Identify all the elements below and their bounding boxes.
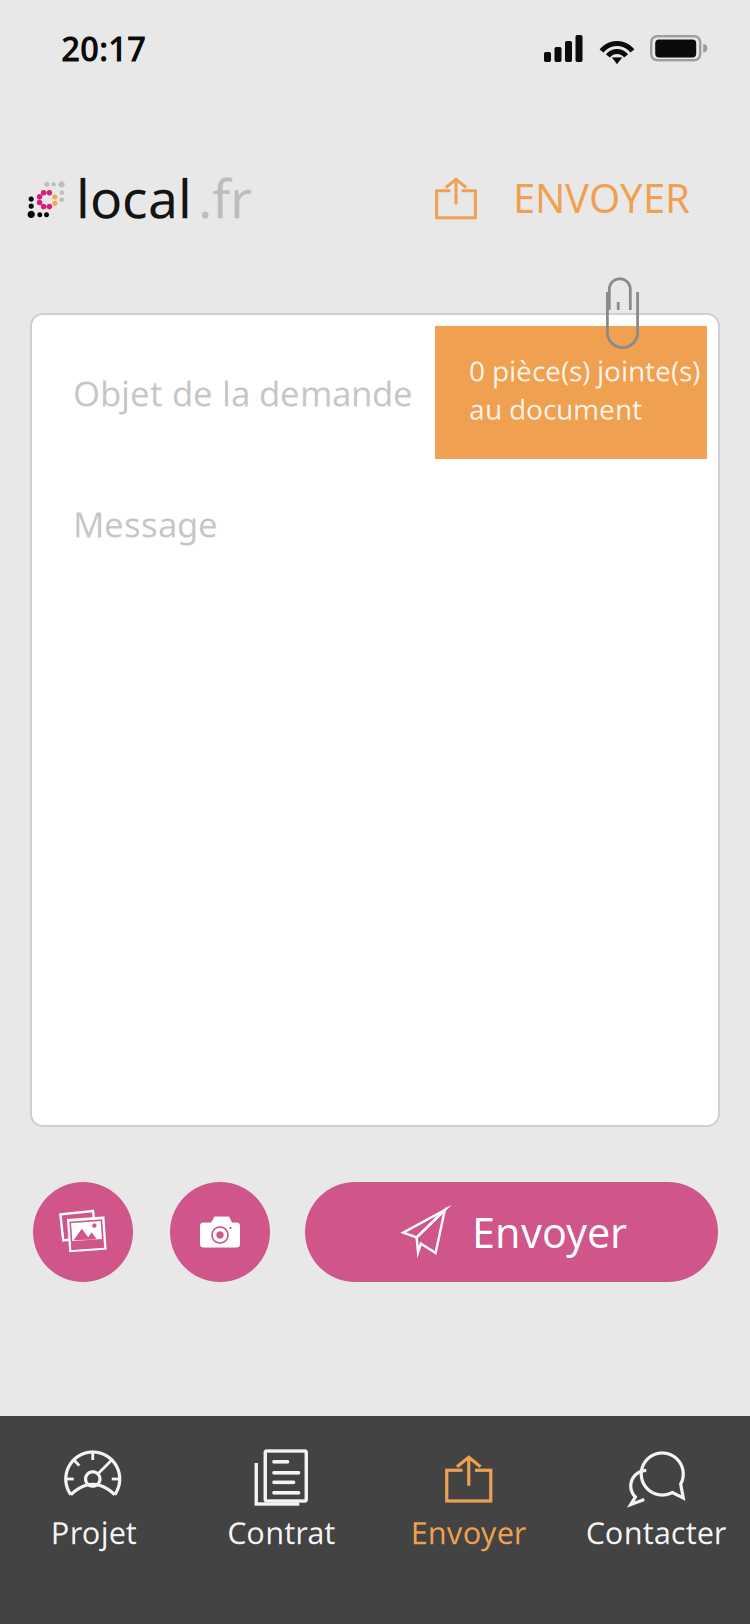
staticText: 20:17: [61, 26, 146, 71]
staticText: Message: [73, 501, 218, 547]
button[interactable]: Contacter: [562, 1416, 750, 1624]
staticText: Contrat: [227, 1512, 335, 1553]
button[interactable]: Projet: [0, 1416, 187, 1624]
staticText: Objet de la demande: [73, 370, 413, 416]
button[interactable]: Appareil photo: [170, 1182, 270, 1282]
staticText: .fr: [198, 162, 252, 233]
button[interactable]: Envoyer: [375, 1416, 562, 1624]
button[interactable]: Partager: [427, 167, 485, 229]
button[interactable]: Envoyer: [305, 1182, 718, 1282]
button[interactable]: 0 pièce(s) jointe(s): [435, 326, 707, 459]
button[interactable]: Contrat: [187, 1416, 375, 1624]
staticText: Envoyer: [411, 1512, 527, 1553]
button[interactable]: Photothèque: [33, 1182, 133, 1282]
staticText: au document: [469, 390, 642, 427]
staticText: Contacter: [586, 1512, 727, 1553]
staticText: Projet: [51, 1512, 137, 1553]
staticText: local: [76, 162, 192, 233]
staticText: Envoyer: [472, 1205, 627, 1259]
staticText: ENVOYER: [513, 171, 690, 224]
button[interactable]: ENVOYER: [485, 159, 690, 236]
staticText: 0 pièce(s) jointe(s): [469, 352, 700, 389]
